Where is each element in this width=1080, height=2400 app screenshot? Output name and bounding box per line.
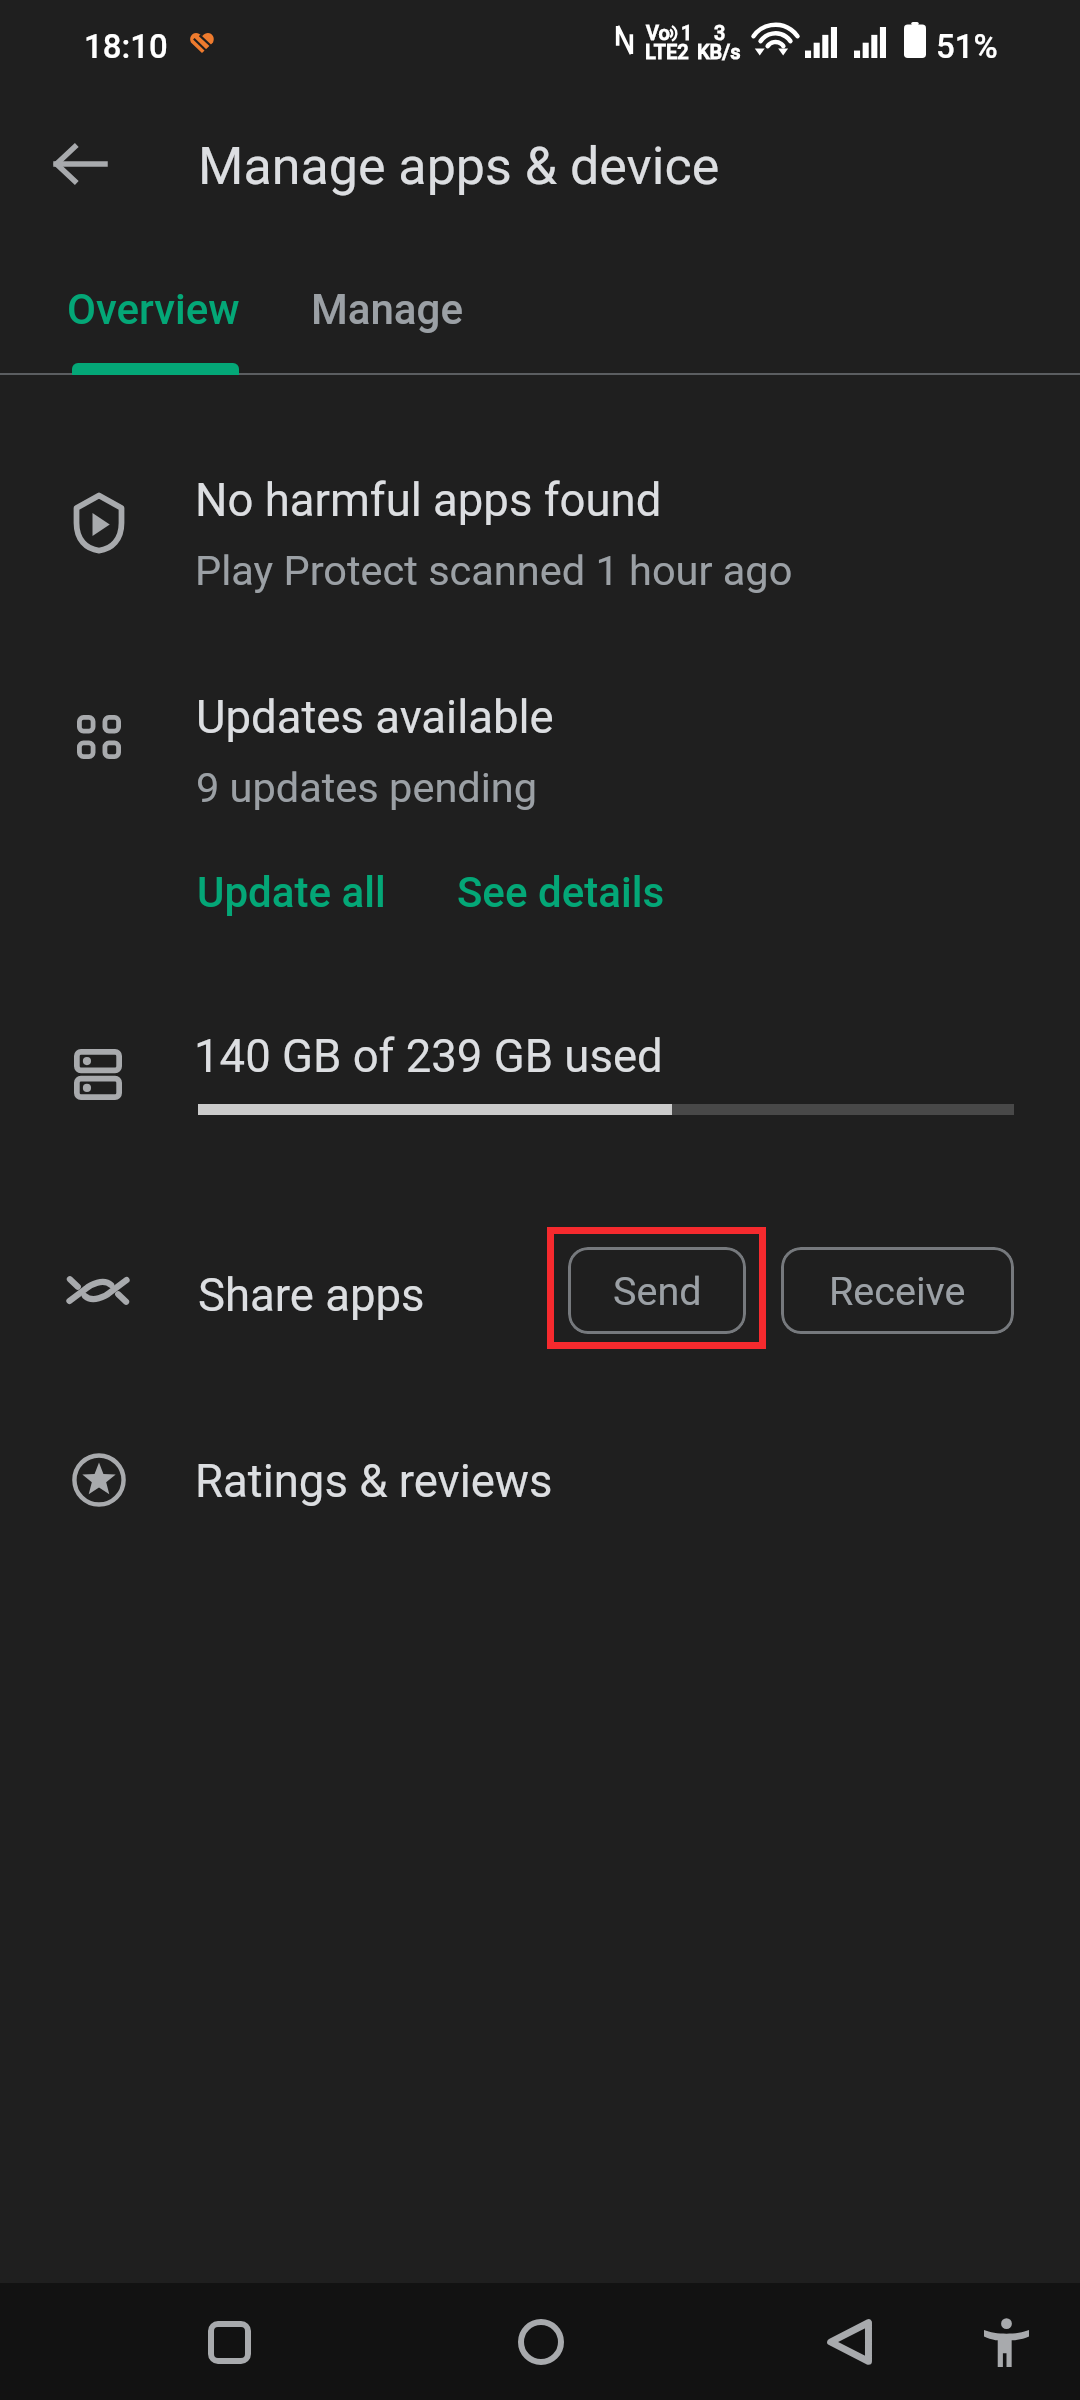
- button[interactable]: [0, 448, 1080, 608]
- staticText: Updates available: [196, 691, 554, 744]
- staticText: Ratings & reviews: [195, 1455, 553, 1508]
- button[interactable]: [0, 1420, 1080, 1550]
- staticText: Update all: [197, 868, 386, 917]
- staticText: KB/s: [697, 40, 741, 63]
- staticText: Play Protect scanned 1 hour ago: [195, 546, 793, 595]
- button[interactable]: Back: [806, 2298, 894, 2386]
- staticText: 9 updates pending: [196, 763, 538, 812]
- staticText: Overview: [67, 285, 240, 334]
- staticText: 18:10: [84, 27, 168, 66]
- staticText: LTE2: [645, 40, 689, 63]
- staticText: Vo: [646, 21, 670, 44]
- button[interactable]: Manage: [311, 250, 560, 374]
- staticText: 140 GB of 239 GB used: [194, 1030, 663, 1083]
- staticText: Receive: [829, 1268, 966, 1314]
- button[interactable]: Home: [497, 2298, 585, 2386]
- button[interactable]: Accessibility: [962, 2298, 1050, 2386]
- staticText: Manage: [311, 285, 463, 334]
- button[interactable]: [0, 666, 1080, 822]
- button[interactable]: [0, 1010, 1080, 1140]
- button[interactable]: Update all: [176, 857, 413, 947]
- button[interactable]: See details: [435, 857, 685, 947]
- staticText: No harmful apps found: [195, 474, 662, 527]
- staticText: See details: [457, 868, 665, 917]
- staticText: 51%: [936, 27, 998, 66]
- staticText: 1: [681, 21, 693, 44]
- staticText: 3: [714, 21, 726, 44]
- button[interactable]: Receive: [781, 1247, 1014, 1334]
- staticText: Manage apps & device: [198, 136, 720, 197]
- button[interactable]: Navigate up: [34, 118, 126, 210]
- staticText: Send: [613, 1268, 702, 1314]
- staticText: Share apps: [198, 1269, 425, 1322]
- button[interactable]: Recent apps: [185, 2298, 273, 2386]
- button[interactable]: Send: [568, 1247, 746, 1334]
- button[interactable]: Overview: [0, 250, 311, 374]
